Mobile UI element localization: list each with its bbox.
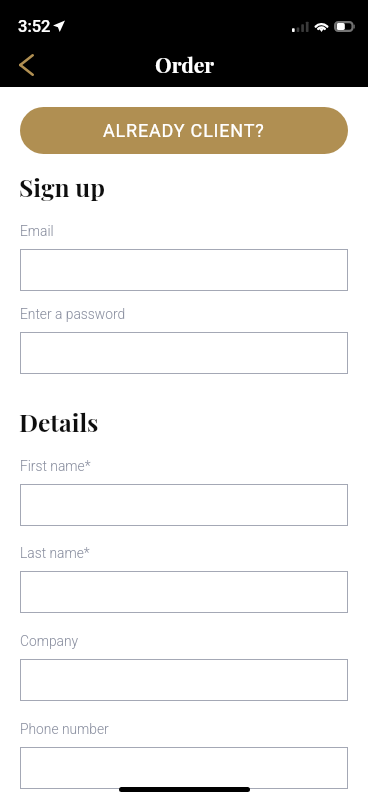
staticText: Details [19,405,99,438]
button[interactable]: Phone number [20,747,348,789]
staticText: 3:52 [18,17,51,36]
staticText: Order [155,50,214,78]
staticText: Company [20,633,79,649]
button[interactable]: Company [20,659,348,701]
button[interactable]: Back [2,41,50,88]
staticText: Email [20,223,54,239]
staticText: ALREADY CLIENT? [103,120,265,141]
button[interactable]: First name* [20,484,348,526]
button[interactable]: ALREADY CLIENT? [20,107,348,154]
staticText: First name* [20,458,91,474]
button[interactable]: Last name* [20,571,348,613]
staticText: Enter a password [20,306,126,322]
button[interactable]: Email [20,249,348,291]
staticText: Sign up [19,170,105,203]
button[interactable]: Enter a password [20,332,348,374]
staticText: Phone number [20,721,109,737]
staticText: Last name* [20,545,90,561]
